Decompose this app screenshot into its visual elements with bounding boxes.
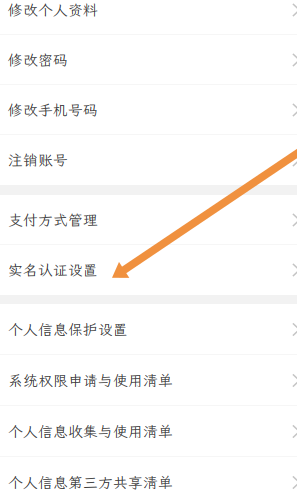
button[interactable]: 个人信息保护设置 bbox=[0, 304, 297, 355]
staticText: 个人信息收集与使用清单 bbox=[8, 422, 173, 441]
staticText: 注销账号 bbox=[8, 150, 68, 170]
staticText: 支付方式管理 bbox=[8, 210, 98, 230]
staticText: 系统权限申请与使用清单 bbox=[8, 371, 173, 390]
button[interactable]: 修改手机号码 bbox=[0, 85, 297, 135]
button[interactable]: 支付方式管理 bbox=[0, 195, 297, 245]
button[interactable]: 个人信息收集与使用清单 bbox=[0, 406, 297, 457]
button[interactable]: 注销账号 bbox=[0, 135, 297, 185]
button[interactable]: 修改个人资料 bbox=[0, 0, 297, 35]
button[interactable]: 修改密码 bbox=[0, 35, 297, 85]
staticText: 个人信息第三方共享清单 bbox=[8, 473, 173, 492]
button[interactable]: 系统权限申请与使用清单 bbox=[0, 355, 297, 406]
staticText: 修改密码 bbox=[8, 50, 68, 70]
button[interactable]: 个人信息第三方共享清单 bbox=[0, 457, 297, 504]
staticText: 实名认证设置 bbox=[8, 260, 98, 280]
button[interactable]: 实名认证设置 bbox=[0, 245, 297, 295]
staticText: 修改手机号码 bbox=[8, 100, 98, 120]
staticText: 修改个人资料 bbox=[8, 0, 98, 20]
staticText: 个人信息保护设置 bbox=[8, 320, 128, 339]
